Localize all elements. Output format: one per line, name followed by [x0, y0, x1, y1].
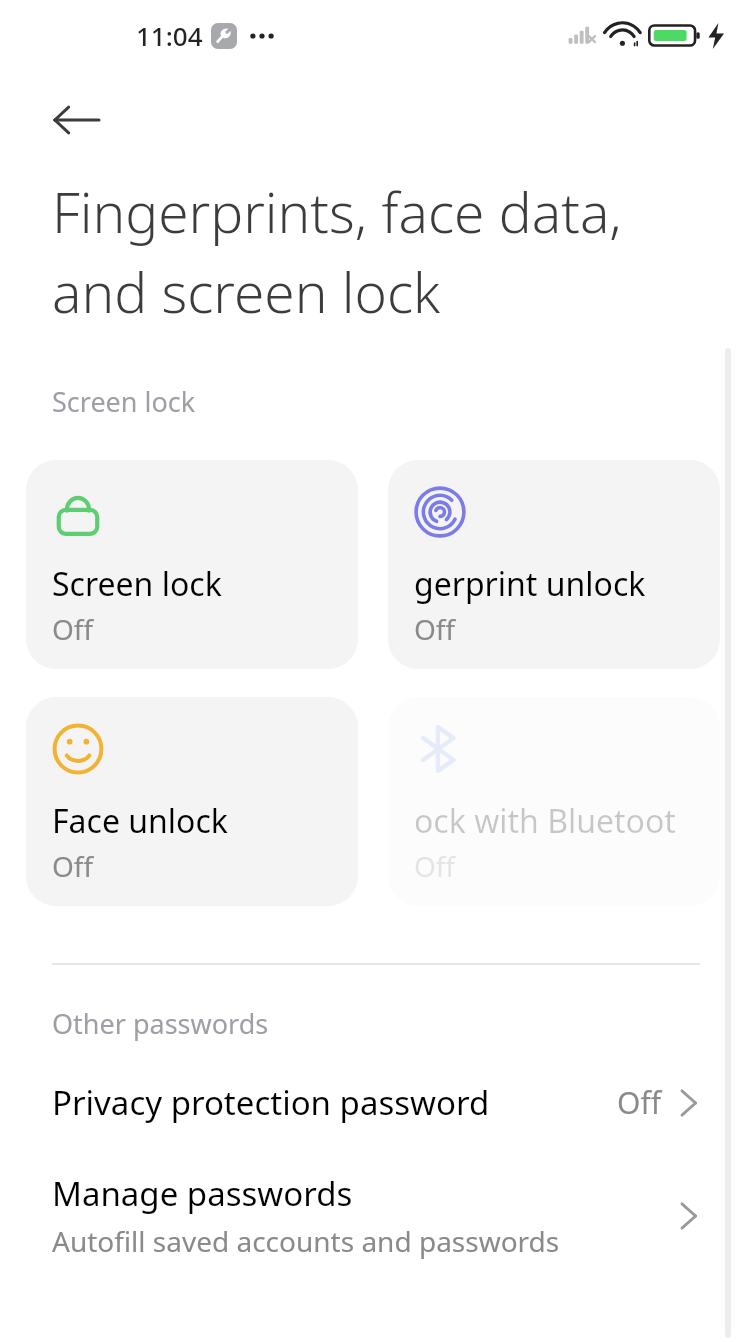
button[interactable]: ock with Bluetoot — [388, 697, 720, 906]
staticText: 11:04 — [136, 18, 203, 53]
button[interactable]: Manage passwords — [0, 1171, 744, 1260]
button[interactable]: Back — [38, 82, 114, 158]
staticText: Fingerprints, face data, and screen lock — [52, 174, 704, 329]
staticText: Off — [52, 847, 94, 885]
staticText: Screen lock — [52, 562, 222, 606]
staticText: Face unlock — [52, 799, 228, 843]
staticText: gerprint unlock — [414, 562, 646, 606]
button[interactable]: Screen lock — [26, 460, 358, 669]
staticText: Off — [414, 847, 456, 885]
staticText: Manage passwords — [52, 1171, 353, 1216]
staticText: Screen lock — [52, 383, 196, 420]
button[interactable]: Privacy protection password — [0, 1080, 744, 1125]
staticText: Off — [617, 1082, 662, 1123]
button[interactable]: Face unlock — [26, 697, 358, 906]
staticText: Off — [52, 610, 94, 648]
staticText: Off — [414, 610, 456, 648]
staticText: Autofill saved accounts and passwords — [52, 1222, 560, 1260]
staticText: Other passwords — [52, 1005, 269, 1042]
staticText: Privacy protection password — [52, 1080, 490, 1125]
staticText: ock with Bluetoot — [414, 799, 676, 843]
button[interactable]: gerprint unlock — [388, 460, 720, 669]
